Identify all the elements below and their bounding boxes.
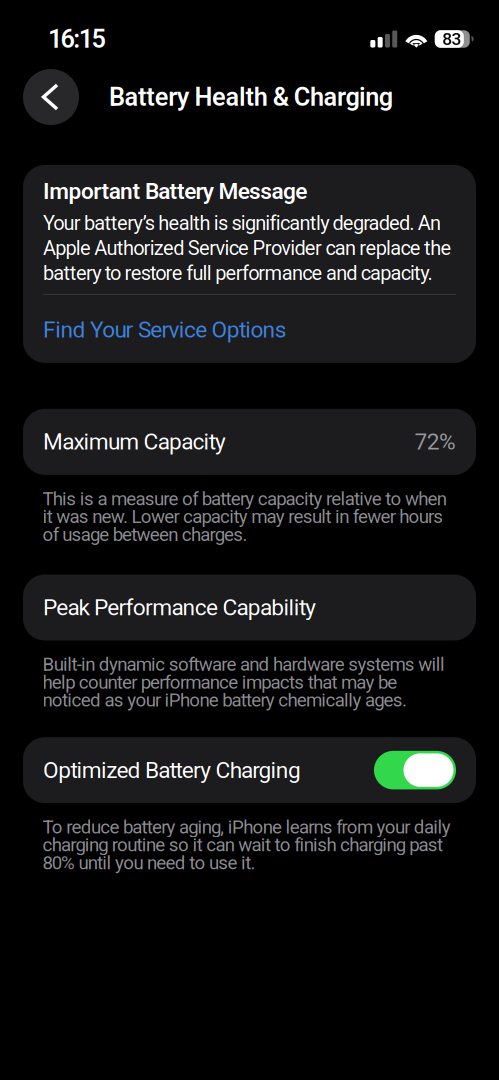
- staticText: This is a measure of battery capacity re…: [42, 488, 447, 545]
- staticText: To reduce battery aging, iPhone learns f…: [42, 816, 451, 874]
- button[interactable]: Maximum Capacity: [23, 409, 476, 475]
- button[interactable]: Back: [23, 69, 79, 125]
- staticText: Important Battery Message: [43, 178, 307, 205]
- staticText: Battery Health & Charging: [109, 82, 393, 112]
- staticText: Peak Performance Capability: [43, 594, 316, 621]
- button[interactable]: Find Your Service Options: [43, 318, 456, 342]
- staticText: 72%: [415, 429, 456, 455]
- staticText: 83: [442, 29, 461, 49]
- staticText: Maximum Capacity: [43, 429, 226, 455]
- staticText: 16:15: [48, 24, 105, 54]
- staticText: Your battery’s health is significantly d…: [43, 212, 451, 285]
- staticText: Optimized Battery Charging: [43, 757, 301, 783]
- staticText: Built-in dynamic software and hardware s…: [42, 653, 445, 711]
- button[interactable]: Optimized Battery Charging: [23, 737, 476, 803]
- button[interactable]: Peak Performance Capability: [23, 574, 476, 640]
- staticText: Find Your Service Options: [43, 317, 287, 343]
